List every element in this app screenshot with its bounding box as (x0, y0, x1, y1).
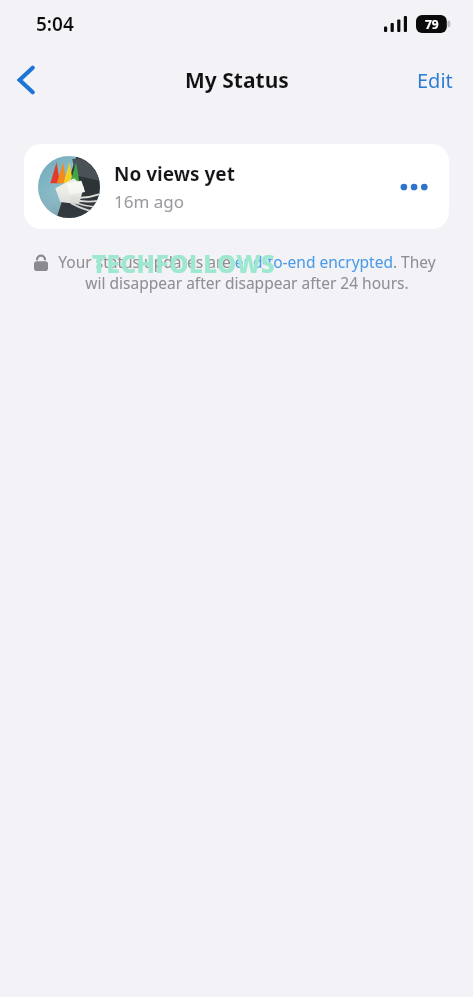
staticText: 5:04 (36, 11, 74, 37)
staticText: Edit (417, 67, 453, 94)
staticText: 16m ago (114, 190, 185, 213)
button[interactable]: Status thumbnail (24, 144, 449, 229)
button[interactable]: More options (391, 165, 435, 209)
staticText: My Status (185, 66, 289, 95)
button[interactable]: Status thumbnail (38, 156, 100, 218)
button[interactable]: Back (3, 57, 49, 103)
staticText: TECHFOLLOWS (92, 247, 276, 279)
staticText: 79 (425, 16, 439, 32)
button[interactable]: Edit (409, 61, 461, 100)
staticText: No views yet (114, 161, 235, 187)
staticText: Your status updates are end-to-end encry… (55, 251, 439, 294)
